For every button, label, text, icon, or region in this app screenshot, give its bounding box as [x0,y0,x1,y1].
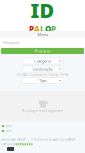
button[interactable]: Menu [0,31,85,38]
staticText: O [45,23,51,34]
staticText: P [29,23,34,34]
staticText: Categorias [1,142,15,146]
button[interactable]: Tipo [22,77,63,83]
staticText: Pesquisar [3,40,20,45]
staticText: ▾ [59,59,61,63]
button[interactable]: Localização [22,66,63,72]
staticText: Identidade PALOP · © Direitos reservados… [1,138,76,141]
staticText: P [51,23,56,34]
staticText: Procurar [34,48,50,54]
staticText: ID [30,0,54,23]
staticText: ▾ [59,67,61,71]
button[interactable]: Procurar [1,48,84,54]
button[interactable]: Categoria [22,58,63,64]
staticText: Menu [37,32,47,37]
staticText: ▾ [59,78,61,83]
staticText: L [40,23,45,34]
staticText: Unidade Curricular ou Código Postal [16,73,68,76]
button[interactable]: Pesquisar [0,38,85,47]
staticText: A [34,23,40,34]
staticText: Tipo [39,78,46,83]
staticText: Localização [32,66,52,72]
staticText: Categoria [34,58,51,64]
staticText: This plugin is not supported [22,109,63,113]
